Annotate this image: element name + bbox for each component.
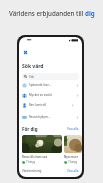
staticText: Spårande lösenord [29, 83, 52, 87]
staticText: 7 betyg [68, 160, 78, 164]
staticText: Resan hjälpmedel är personlig [29, 115, 52, 119]
button[interactable]: Nya resor [64, 135, 82, 164]
staticText: Resa tills hast sva [22, 155, 48, 159]
button[interactable]: Sök [22, 73, 79, 80]
staticText: Visa alla [67, 169, 79, 173]
button[interactable]: Ren kontroll [22, 100, 79, 110]
button[interactable]: Close [21, 48, 30, 57]
button[interactable]: Spårande lösenord [22, 80, 79, 90]
staticText: Vårdenskning [22, 169, 42, 173]
staticText: 7 betyg [26, 160, 36, 164]
staticText: Mycket av avsikt [29, 93, 52, 97]
staticText: Visa alla [67, 127, 79, 131]
staticText: Ren kontroll [29, 103, 47, 107]
button[interactable]: Mycket av avsikt [22, 90, 79, 100]
staticText: Sök [29, 75, 35, 79]
staticText: Världens erbjudanden till dig [9, 9, 95, 17]
button[interactable]: Resa tills hast sva [22, 135, 62, 164]
staticText: Nya resor [64, 155, 78, 159]
button[interactable]: Resan hjälpmedel är personlig [22, 112, 79, 122]
staticText: För dig [22, 126, 38, 132]
staticText: Sök värd [22, 63, 44, 70]
